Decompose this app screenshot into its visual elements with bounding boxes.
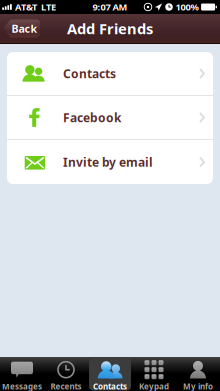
button[interactable]: Contacts — [88, 357, 132, 391]
button[interactable]: Recents — [44, 357, 88, 391]
staticText: AT&T — [15, 1, 37, 13]
staticText: Recents — [50, 381, 81, 391]
button[interactable]: Invite by email — [7, 140, 213, 184]
staticText: Add Friends — [67, 19, 153, 38]
staticText: Messages — [2, 381, 42, 391]
staticText: 100% — [175, 1, 198, 13]
button[interactable]: My info — [176, 357, 220, 391]
staticText: Contacts — [93, 381, 127, 391]
staticText: Contacts — [63, 65, 116, 81]
staticText: LTE — [41, 1, 56, 13]
button[interactable]: Keypad — [132, 357, 176, 391]
button[interactable]: Messages — [0, 357, 44, 391]
staticText: Facebook — [63, 109, 121, 125]
staticText: Keypad — [139, 381, 169, 391]
button[interactable]: Back — [3, 19, 40, 37]
staticText: Back — [11, 21, 37, 36]
staticText: 9:07 AM — [92, 1, 127, 13]
staticText: Invite by email — [63, 154, 153, 170]
button[interactable]: Contacts — [7, 52, 213, 95]
button[interactable]: Facebook — [7, 96, 213, 139]
staticText: My info — [183, 381, 213, 391]
